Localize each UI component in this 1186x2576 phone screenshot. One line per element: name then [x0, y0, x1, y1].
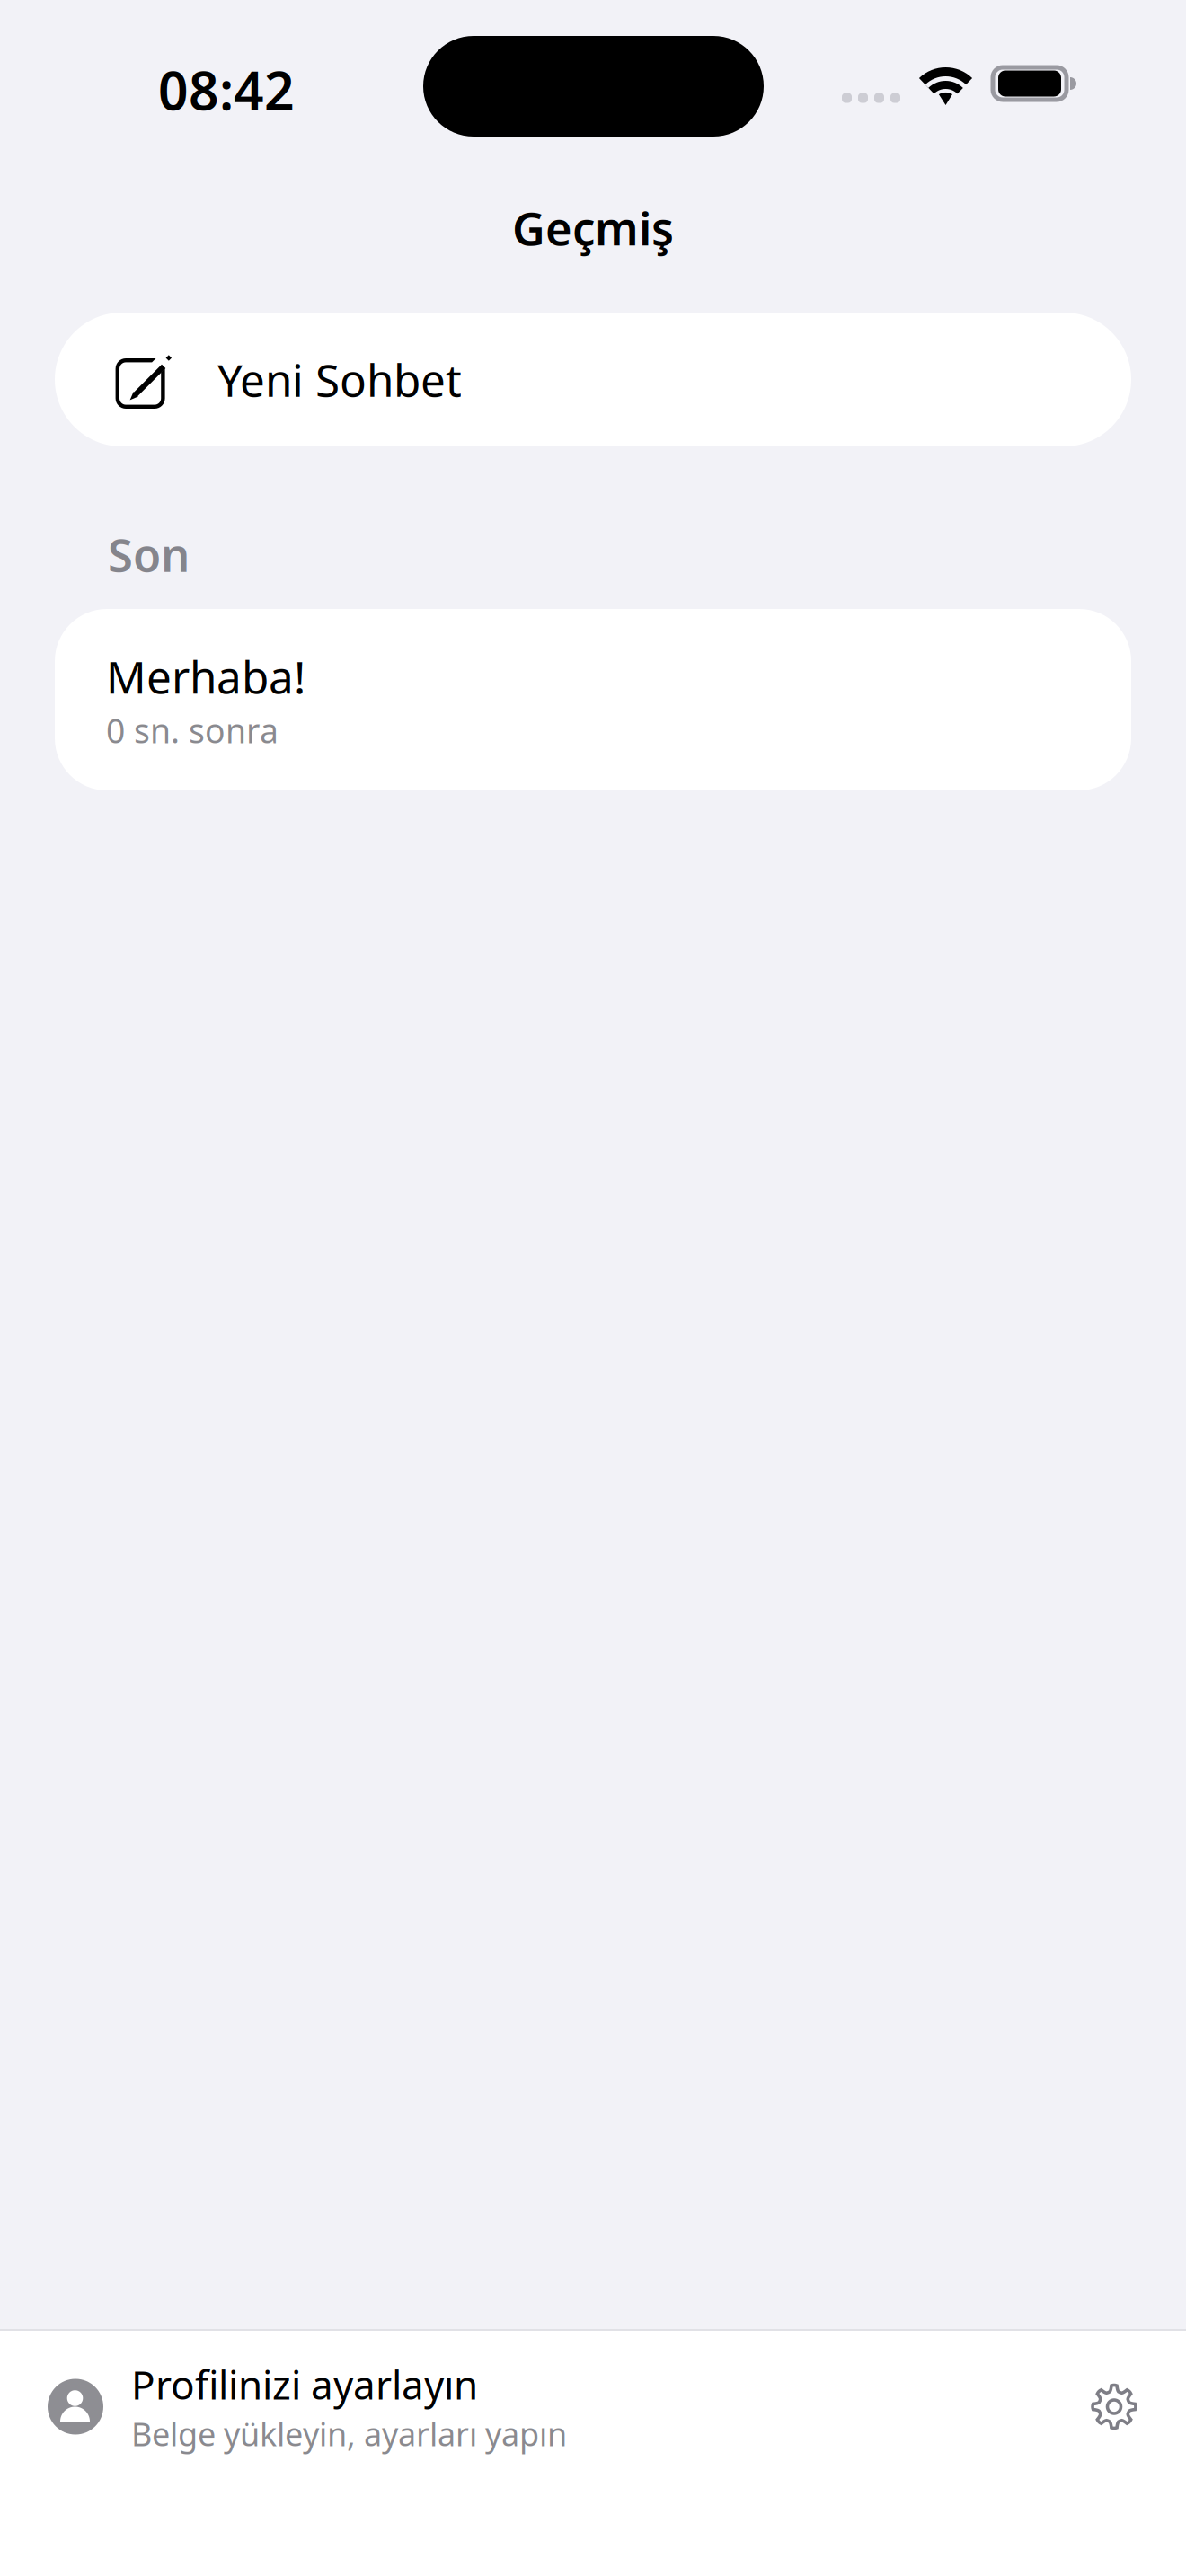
staticText: Yeni Sohbet — [217, 350, 462, 409]
staticText: 08:42 — [158, 55, 295, 125]
staticText: Profilinizi ayarlayın — [131, 2358, 478, 2410]
staticText: Belge yükleyin, ayarları yapın — [131, 2412, 567, 2455]
button[interactable]: Profilinizi ayarlayın — [0, 2331, 1065, 2483]
staticText: 0 sn. sonra — [106, 708, 279, 753]
button[interactable]: Merhaba! — [55, 609, 1131, 790]
staticText: Merhaba! — [106, 647, 305, 706]
button[interactable]: Ayarlar — [1065, 2331, 1164, 2483]
button[interactable]: Yeni Sohbet — [55, 313, 1131, 446]
staticText: Geçmiş — [512, 198, 674, 258]
staticText: Son — [108, 524, 190, 584]
